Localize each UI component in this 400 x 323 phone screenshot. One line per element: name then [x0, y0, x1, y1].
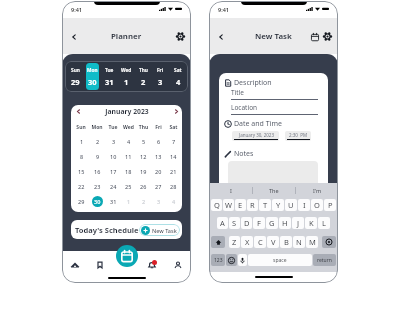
button[interactable]: 4 [123, 136, 134, 147]
button[interactable]: T [259, 199, 271, 211]
button[interactable]: G [266, 217, 278, 229]
button[interactable]: 9 [92, 151, 103, 162]
button[interactable]: L [318, 217, 330, 229]
button[interactable]: 18 [123, 166, 134, 177]
button[interactable]: Saved [87, 251, 113, 279]
button[interactable]: H [279, 217, 291, 229]
staticText: Fri [151, 124, 166, 131]
button[interactable]: New event [116, 245, 138, 267]
button[interactable]: O [311, 199, 323, 211]
button[interactable]: 28 [168, 181, 179, 192]
button[interactable]: 20 [153, 166, 164, 177]
button[interactable]: Fri [154, 63, 167, 90]
button[interactable]: Mon [86, 63, 99, 90]
button[interactable]: 22 [76, 181, 87, 192]
button[interactable]: R [247, 199, 258, 211]
button[interactable]: W [223, 199, 234, 211]
button[interactable]: 16 [92, 166, 103, 177]
button[interactable]: 2:30 PM [285, 131, 311, 141]
button[interactable]: 13 [153, 151, 164, 162]
button[interactable]: 25 [123, 181, 134, 192]
button[interactable]: 30 [92, 196, 103, 207]
button[interactable]: J [292, 217, 304, 229]
button[interactable]: P [324, 199, 336, 211]
button[interactable]: January 30, 2023 [232, 131, 279, 141]
button[interactable]: Notifications [139, 251, 165, 279]
button[interactable]: 26 [138, 181, 149, 192]
button[interactable]: C [254, 236, 266, 248]
button[interactable]: V [267, 236, 279, 248]
button[interactable]: U [285, 199, 297, 211]
button[interactable]: 8 [76, 151, 87, 162]
button[interactable]: 6 [153, 136, 164, 147]
staticText: Thu [136, 124, 151, 131]
button[interactable]: Voice input [238, 254, 247, 266]
button[interactable]: 3 [153, 196, 164, 207]
button[interactable]: Back [214, 30, 227, 43]
button[interactable]: Sat [171, 63, 184, 90]
button[interactable]: X [241, 236, 253, 248]
button[interactable]: Previous month [73, 106, 83, 116]
button[interactable]: The [253, 183, 295, 198]
button[interactable]: 1 [123, 196, 134, 207]
button[interactable]: A [217, 217, 228, 229]
button[interactable]: Emoji [226, 254, 237, 266]
button[interactable]: K [305, 217, 317, 229]
button[interactable]: F [253, 217, 265, 229]
button[interactable]: I [298, 199, 310, 211]
staticText: 3 [112, 138, 116, 145]
button[interactable]: E [235, 199, 246, 211]
button[interactable]: Z [229, 236, 240, 248]
button[interactable]: 31 [108, 196, 119, 207]
button[interactable]: I'm [296, 183, 338, 198]
button[interactable]: B [280, 236, 292, 248]
button[interactable]: Tue [103, 63, 116, 90]
button[interactable]: Q [211, 199, 222, 211]
button[interactable]: 11 [123, 151, 134, 162]
button[interactable]: 19 [138, 166, 149, 177]
button[interactable]: 3 [108, 136, 119, 147]
button[interactable]: 17 [108, 166, 119, 177]
button[interactable]: 2 [138, 196, 149, 207]
button[interactable]: Thu [137, 63, 150, 90]
button[interactable]: 14 [168, 151, 179, 162]
button[interactable]: 23 [92, 181, 103, 192]
button[interactable]: I [209, 183, 252, 198]
button[interactable]: 29 [76, 196, 87, 207]
button[interactable]: 123 [211, 254, 225, 266]
button[interactable]: 5 [138, 136, 149, 147]
button[interactable]: 21 [168, 166, 179, 177]
staticText: 13 [155, 153, 162, 160]
button[interactable]: return [313, 254, 336, 266]
button[interactable]: D [241, 217, 252, 229]
button[interactable]: Settings [322, 31, 333, 42]
button[interactable]: New Task [139, 224, 180, 236]
staticText: 17 [110, 168, 117, 175]
button[interactable]: 10 [108, 151, 119, 162]
button[interactable]: 4 [168, 196, 179, 207]
staticText: I [303, 200, 306, 210]
button[interactable]: 24 [108, 181, 119, 192]
button[interactable]: S [229, 217, 240, 229]
button[interactable]: Wed [120, 63, 133, 90]
button[interactable]: Shift [211, 236, 225, 248]
button[interactable]: 27 [153, 181, 164, 192]
button[interactable]: Settings [175, 31, 186, 42]
staticText: 20 [155, 168, 162, 175]
button[interactable]: Backspace [322, 236, 336, 248]
button[interactable]: Pick date [309, 31, 320, 42]
button[interactable]: Next month [171, 106, 181, 116]
button[interactable]: N [293, 236, 305, 248]
button[interactable]: Y [272, 199, 284, 211]
button[interactable]: Sun [69, 63, 82, 90]
button[interactable]: 2 [92, 136, 103, 147]
button[interactable]: Back [67, 30, 80, 43]
button[interactable]: 1 [76, 136, 87, 147]
button[interactable]: space [248, 254, 312, 266]
button[interactable]: 12 [138, 151, 149, 162]
button[interactable]: M [306, 236, 318, 248]
button[interactable]: 7 [168, 136, 179, 147]
button[interactable]: Home [62, 251, 87, 279]
button[interactable]: 15 [76, 166, 87, 177]
button[interactable]: Profile [165, 251, 191, 279]
